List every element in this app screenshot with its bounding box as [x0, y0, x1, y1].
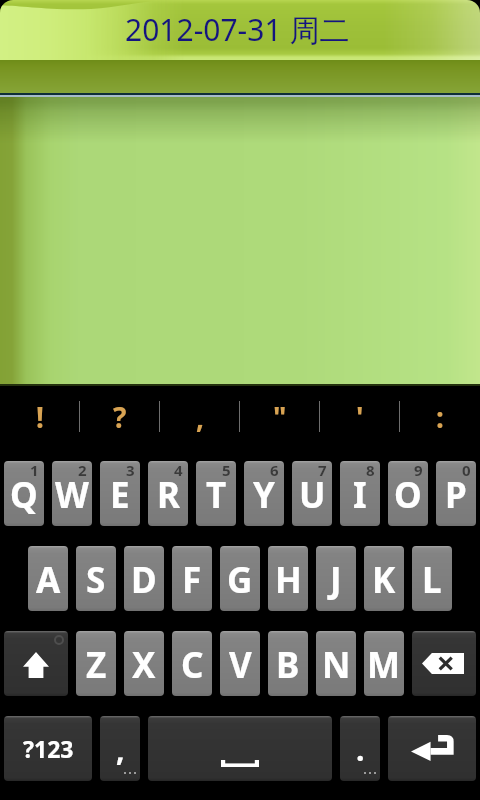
button[interactable]: Space: [148, 716, 332, 781]
button[interactable]: R: [148, 461, 188, 526]
staticText: 2012-07-31 周二: [125, 9, 350, 50]
staticText: L: [422, 556, 442, 604]
button[interactable]: A: [28, 546, 68, 611]
staticText: :: [436, 398, 444, 436]
staticText: 6: [270, 461, 279, 480]
button[interactable]: ,: [160, 386, 240, 461]
staticText: N: [322, 641, 351, 689]
staticText: ': [356, 398, 364, 436]
button[interactable]: C: [172, 631, 212, 696]
button[interactable]: Y: [244, 461, 284, 526]
button[interactable]: K: [364, 546, 404, 611]
staticText: G: [227, 556, 253, 604]
button[interactable]: F: [172, 546, 212, 611]
staticText: ?123: [23, 733, 74, 764]
staticText: S: [86, 556, 106, 604]
staticText: Q: [10, 471, 38, 519]
staticText: 9: [414, 461, 423, 480]
button[interactable]: ?123: [4, 716, 92, 781]
button[interactable]: !: [0, 386, 80, 461]
staticText: Y: [253, 471, 275, 519]
button[interactable]: ": [240, 386, 320, 461]
staticText: !: [36, 398, 44, 436]
button[interactable]: S: [76, 546, 116, 611]
button[interactable]: E: [100, 461, 140, 526]
staticText: 5: [222, 461, 231, 480]
staticText: ,: [116, 729, 125, 770]
staticText: .: [356, 729, 365, 770]
button[interactable]: V: [220, 631, 260, 696]
button[interactable]: .: [340, 716, 380, 781]
staticText: 1: [30, 461, 39, 480]
staticText: O: [394, 471, 422, 519]
staticText: ,: [196, 398, 204, 436]
staticText: D: [131, 556, 157, 604]
button[interactable]: P: [436, 461, 476, 526]
button[interactable]: I: [340, 461, 380, 526]
button[interactable]: J: [316, 546, 356, 611]
staticText: T: [206, 471, 227, 519]
staticText: 2: [78, 461, 87, 480]
staticText: U: [299, 471, 326, 519]
staticText: B: [276, 641, 300, 689]
button[interactable]: Q: [4, 461, 44, 526]
button[interactable]: O: [388, 461, 428, 526]
staticText: Z: [86, 641, 107, 689]
button[interactable]: :: [400, 386, 480, 461]
staticText: M: [367, 641, 401, 689]
button[interactable]: ?: [80, 386, 160, 461]
button[interactable]: Z: [76, 631, 116, 696]
staticText: E: [110, 471, 130, 519]
button[interactable]: G: [220, 546, 260, 611]
button[interactable]: L: [412, 546, 452, 611]
button[interactable]: H: [268, 546, 308, 611]
staticText: P: [445, 471, 467, 519]
button[interactable]: ': [320, 386, 400, 461]
staticText: F: [182, 556, 202, 604]
staticText: V: [229, 641, 252, 689]
staticText: A: [36, 556, 61, 604]
staticText: 0: [462, 461, 471, 480]
staticText: R: [157, 471, 180, 519]
button[interactable]: B: [268, 631, 308, 696]
staticText: 7: [318, 461, 327, 480]
staticText: J: [330, 556, 342, 604]
staticText: C: [181, 641, 204, 689]
staticText: X: [132, 641, 156, 689]
button[interactable]: T: [196, 461, 236, 526]
button[interactable]: Shift: [4, 631, 68, 696]
staticText: K: [372, 556, 396, 604]
button[interactable]: ,: [100, 716, 140, 781]
button[interactable]: Enter: [388, 716, 476, 781]
staticText: 3: [126, 461, 135, 480]
staticText: 4: [174, 461, 183, 480]
staticText: 8: [366, 461, 375, 480]
staticText: W: [55, 471, 89, 519]
button[interactable]: U: [292, 461, 332, 526]
button[interactable]: N: [316, 631, 356, 696]
staticText: H: [275, 556, 302, 604]
button[interactable]: Backspace: [412, 631, 476, 696]
button[interactable]: W: [52, 461, 92, 526]
button[interactable]: X: [124, 631, 164, 696]
button[interactable]: M: [364, 631, 404, 696]
staticText: ?: [113, 398, 127, 436]
staticText: I: [353, 471, 367, 519]
button[interactable]: D: [124, 546, 164, 611]
staticText: ": [273, 398, 287, 436]
